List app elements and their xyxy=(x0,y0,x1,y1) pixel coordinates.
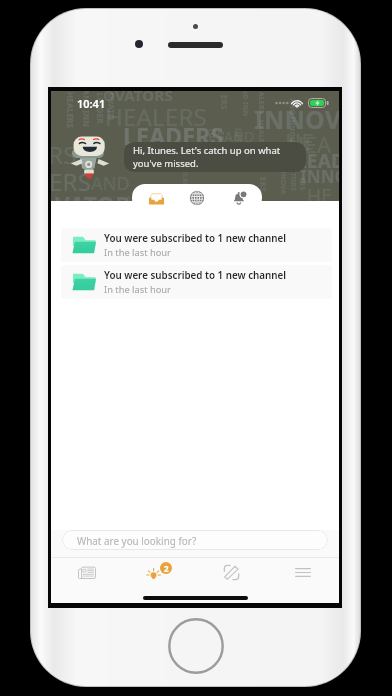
staticText: HE xyxy=(307,183,333,201)
staticText: VATORS xyxy=(55,189,144,201)
staticText: AND xyxy=(224,127,255,146)
staticText: In the last hour xyxy=(104,283,171,296)
button[interactable]: Notifications xyxy=(221,185,257,211)
staticText: HE xyxy=(285,126,314,156)
staticText: HEALERS xyxy=(256,120,266,152)
staticText: 2 xyxy=(164,563,169,574)
staticText: ERS xyxy=(258,177,269,192)
button[interactable]: What are you looking for? xyxy=(62,530,328,550)
staticText: Hi, Itunes. Let's catch up on what you'v… xyxy=(133,144,297,170)
staticText: TORS xyxy=(206,127,217,149)
staticText: AND INNOVATORS xyxy=(286,98,296,165)
button[interactable]: Inbox xyxy=(138,185,174,211)
staticText: HEALERS xyxy=(256,91,266,114)
staticText: ERS xyxy=(219,95,230,110)
staticText: You were subscribed to 1 new channel xyxy=(104,269,287,282)
staticText: HEALERS xyxy=(65,92,76,129)
staticText: ERS xyxy=(267,145,278,160)
staticText: OVATO xyxy=(105,92,116,120)
button[interactable]: Menu xyxy=(267,558,339,587)
button[interactable]: You were subscribed to 1 new channel xyxy=(61,228,332,262)
staticText: INNOVA xyxy=(254,102,339,136)
staticText: DERS xyxy=(233,128,244,149)
staticText: TORS xyxy=(287,172,297,191)
staticText: LEADER xyxy=(94,92,105,124)
staticText: In the last hour xyxy=(104,246,171,259)
staticText: HEALERS xyxy=(105,100,207,133)
staticText: ERS xyxy=(51,165,92,198)
staticText: AND INN xyxy=(80,91,91,127)
staticText: HEALERS xyxy=(180,168,190,200)
staticText: INNOVA xyxy=(300,165,339,188)
staticText: ALERS xyxy=(124,190,169,201)
button[interactable]: News xyxy=(51,558,123,587)
staticText: INNOVA xyxy=(278,165,288,195)
button[interactable]: You were subscribed to 1 new channel xyxy=(61,265,332,299)
button[interactable]: Compose xyxy=(195,558,267,587)
staticText: LEADER xyxy=(296,148,339,174)
button[interactable]: Ideas xyxy=(123,558,195,587)
staticText: You were subscribed to 1 new channel xyxy=(104,232,287,245)
staticText: AND INN xyxy=(239,91,249,116)
staticText: OVATORS xyxy=(103,91,173,105)
button[interactable]: Discover xyxy=(179,185,215,211)
staticText: AND xyxy=(91,171,130,196)
staticText: LEADERS xyxy=(123,120,224,151)
staticText: ERS xyxy=(216,131,227,146)
staticText: ERS xyxy=(296,177,306,190)
staticText: What are you looking for? xyxy=(77,534,197,547)
staticText: AND xyxy=(137,155,172,177)
staticText: RS xyxy=(51,138,77,171)
staticText: 10:41 xyxy=(77,96,106,111)
staticText: HEA xyxy=(288,129,332,159)
